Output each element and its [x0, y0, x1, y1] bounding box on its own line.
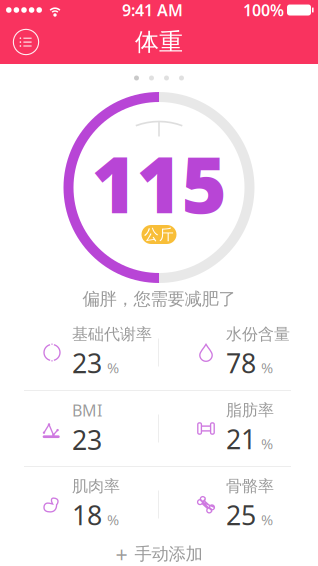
staticText: 25 [226, 497, 256, 532]
staticText: 23 [72, 422, 102, 457]
staticText: 115 [91, 132, 226, 235]
staticText: 9:41 AM [122, 0, 183, 21]
staticText: 基础代谢率 [72, 324, 152, 344]
staticText: 100% [243, 0, 284, 21]
staticText: 脂肪率 [226, 400, 274, 420]
staticText: 体重 [135, 27, 183, 57]
staticText: 78 [226, 345, 256, 380]
staticText: % [261, 510, 273, 529]
staticText: 23 [72, 345, 102, 380]
button[interactable]: + [0, 542, 318, 566]
staticText: % [107, 510, 119, 529]
staticText: % [107, 358, 119, 377]
staticText: 21 [226, 421, 256, 456]
staticText: BMI [72, 400, 102, 421]
staticText: % [261, 434, 273, 453]
staticText: 公斤 [144, 225, 174, 243]
staticText: 肌肉率 [72, 476, 120, 496]
staticText: 18 [72, 497, 102, 532]
button[interactable]: Menu [0, 28, 52, 56]
staticText: % [261, 358, 273, 377]
staticText: 骨骼率 [226, 476, 274, 496]
staticText: 偏胖，您需要减肥了 [82, 288, 235, 310]
staticText: + [115, 540, 127, 566]
staticText: 水份含量 [226, 324, 290, 344]
staticText: 手动添加 [134, 543, 202, 565]
